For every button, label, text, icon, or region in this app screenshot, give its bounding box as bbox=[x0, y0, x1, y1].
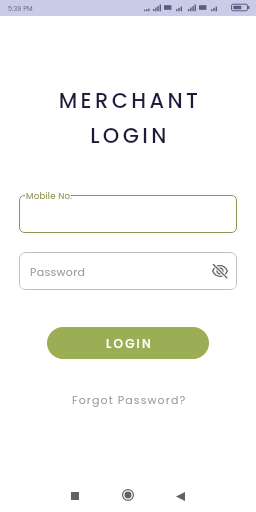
button[interactable]: Mobile No. bbox=[19, 188, 237, 233]
staticText: LOGIN bbox=[2, 121, 256, 150]
button[interactable]: Forgot Password? bbox=[66, 388, 193, 411]
button[interactable]: Home bbox=[116, 483, 140, 507]
staticText: Mobile No. bbox=[26, 190, 73, 202]
staticText: Password bbox=[30, 264, 86, 279]
button[interactable]: LOGIN bbox=[47, 327, 209, 359]
button[interactable]: Back bbox=[168, 484, 192, 508]
staticText: 5:39 PM bbox=[8, 4, 33, 13]
staticText: MERCHANT bbox=[2, 86, 256, 115]
staticText: LOGIN bbox=[106, 335, 153, 352]
button[interactable]: Password bbox=[19, 252, 237, 290]
staticText: Forgot Password? bbox=[72, 392, 187, 407]
button[interactable]: Toggle password visibility bbox=[210, 261, 230, 281]
button[interactable]: Recent apps bbox=[63, 484, 87, 508]
